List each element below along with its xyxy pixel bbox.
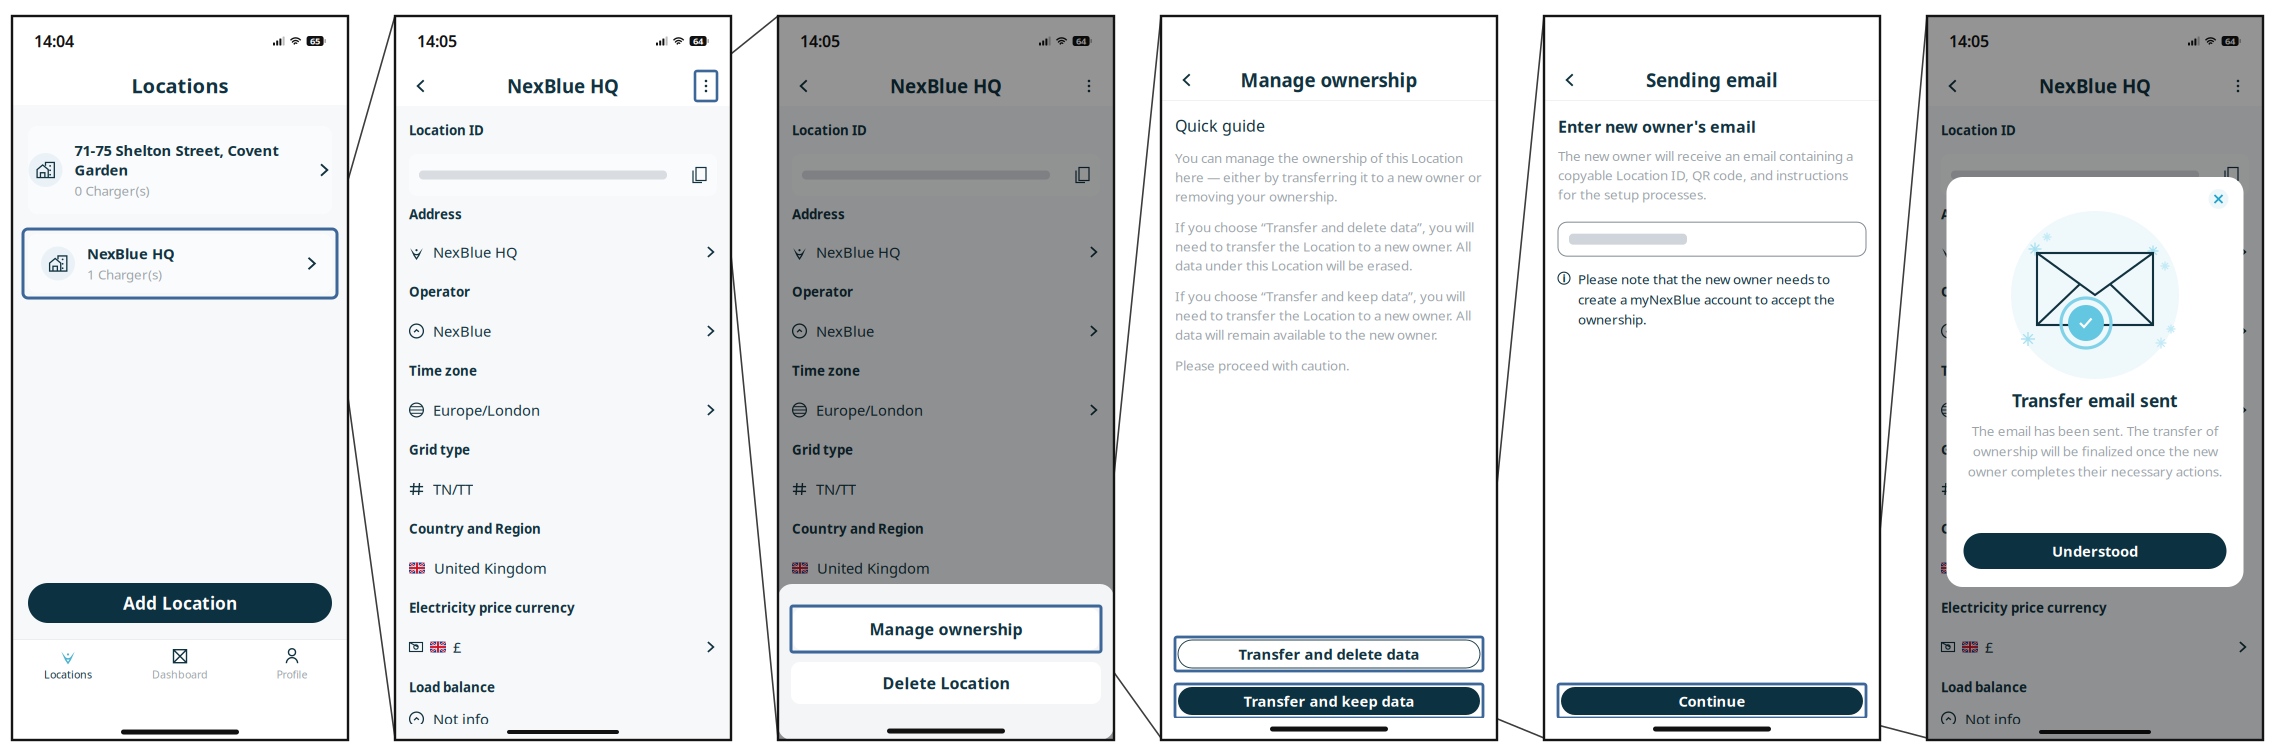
staticText: 14:05 [417, 30, 457, 52]
button[interactable]: More options [695, 71, 717, 101]
staticText: £ [836, 637, 844, 657]
button[interactable]: NexBlue HQ [792, 232, 1100, 272]
button[interactable]: Back [1941, 71, 1965, 101]
button[interactable]: Back [1558, 65, 1582, 95]
button[interactable]: Understood [1963, 533, 2226, 569]
button[interactable]: Transfer and keep data [1175, 684, 1483, 718]
button[interactable]: NexBlue HQ [409, 232, 717, 272]
staticText: If you choose “Transfer and delete data”… [1175, 218, 1474, 274]
button[interactable]: Back [409, 71, 433, 101]
staticText: Country and Region [1941, 520, 2073, 537]
staticText: i [1562, 271, 1565, 285]
staticText: Load balance [409, 678, 495, 696]
staticText: 14:05 [1949, 30, 1989, 52]
staticText: Europe/London [1965, 400, 2072, 420]
button[interactable]: Back [792, 71, 816, 101]
button[interactable]: Back [1175, 65, 1199, 95]
staticText: Address [409, 205, 462, 223]
staticText: Delete Location [882, 672, 1009, 694]
staticText: Time zone [1941, 362, 2009, 379]
staticText: NexBlue [816, 321, 874, 341]
staticText: Transfer and keep data [1243, 691, 1414, 711]
staticText: Transfer and delete data [1238, 644, 1419, 664]
button[interactable]: Delete Location [791, 662, 1101, 704]
staticText: Add Location [123, 591, 237, 614]
button[interactable]: £ [1941, 627, 2249, 667]
staticText: Operator [1941, 283, 2002, 300]
staticText: £ [1985, 637, 1993, 657]
staticText: Electricity price currency [409, 599, 575, 616]
button[interactable]: Europe/London [1941, 390, 2249, 430]
button[interactable]: £ [792, 627, 1100, 667]
staticText: Operator [792, 283, 853, 300]
staticText: United Kingdom [1966, 558, 2079, 578]
button[interactable]: Europe/London [409, 390, 717, 430]
staticText: If you choose “Transfer and keep data”, … [1175, 287, 1471, 343]
button[interactable]: Europe/London [792, 390, 1100, 430]
button[interactable]: Continue [1558, 684, 1866, 718]
button[interactable]: Profile [236, 648, 348, 682]
staticText: Country and Region [409, 520, 541, 537]
button[interactable]: Locations [12, 648, 124, 682]
staticText: 14:05 [800, 30, 840, 52]
button[interactable]: NexBlue [409, 311, 717, 351]
button[interactable]: NexBlue [1941, 311, 2249, 351]
button[interactable]: £ [409, 627, 717, 667]
staticText: TN/TT [433, 479, 473, 499]
staticText: Not info [433, 709, 489, 729]
staticText: 64 [1076, 35, 1086, 47]
staticText: Location ID [409, 121, 484, 139]
staticText: 65 [310, 35, 320, 47]
button[interactable]: More options [1078, 71, 1100, 101]
staticText: Load balance [1941, 678, 2027, 696]
staticText: NexBlue HQ [1965, 242, 2049, 262]
staticText: Location ID [1941, 121, 2016, 139]
staticText: Manage ownership [869, 618, 1022, 640]
staticText: 0 Charger(s) [74, 182, 149, 199]
staticText: 64 [2225, 35, 2235, 47]
staticText: 1 Charger(s) [87, 265, 162, 283]
staticText: Operator [409, 283, 470, 300]
staticText: Quick guide [1175, 115, 1265, 136]
button[interactable]: Add Location [28, 583, 332, 623]
button[interactable]: NexBlue HQ [23, 229, 337, 298]
button[interactable]: More options [2227, 71, 2249, 101]
staticText: Grid type [1941, 441, 2002, 458]
staticText: 14:04 [34, 30, 74, 52]
staticText: Continue [1678, 691, 1745, 711]
button[interactable]: Manage ownership [791, 606, 1101, 652]
staticText: NexBlue HQ [87, 244, 175, 263]
staticText: Enter new owner's email [1558, 116, 1756, 137]
button[interactable]: Close [2207, 188, 2229, 210]
staticText: Locations [131, 72, 228, 99]
staticText: NexBlue HQ [433, 242, 517, 262]
staticText: Please proceed with caution. [1175, 356, 1350, 374]
staticText: NexBlue HQ [816, 242, 900, 262]
staticText: Electricity price currency [1941, 599, 2107, 616]
staticText: Grid type [409, 441, 470, 458]
staticText: Time zone [409, 362, 477, 379]
staticText: Dashboard [152, 667, 208, 681]
staticText: Europe/London [433, 400, 540, 420]
staticText: Transfer email sent [2012, 389, 2178, 412]
button[interactable]: NexBlue HQ [1941, 232, 2249, 272]
staticText: Sending email [1646, 68, 1778, 92]
staticText: Address [1941, 205, 1994, 223]
staticText: Grid type [792, 441, 853, 458]
staticText: United Kingdom [817, 558, 930, 578]
staticText: NexBlue HQ [507, 74, 619, 98]
staticText: Location ID [792, 121, 867, 139]
staticText: Locations [44, 667, 92, 681]
button[interactable]: Dashboard [124, 648, 236, 682]
staticText: TN/TT [816, 479, 856, 499]
button[interactable]: NexBlue [792, 311, 1100, 351]
staticText: NexBlue [1965, 321, 2023, 341]
staticText: Address [792, 205, 845, 223]
staticText: The email has been sent. The transfer of… [1967, 422, 2222, 480]
staticText: Europe/London [816, 400, 923, 420]
staticText: Not info [1965, 709, 2021, 729]
button[interactable]: Transfer and delete data [1175, 637, 1483, 671]
